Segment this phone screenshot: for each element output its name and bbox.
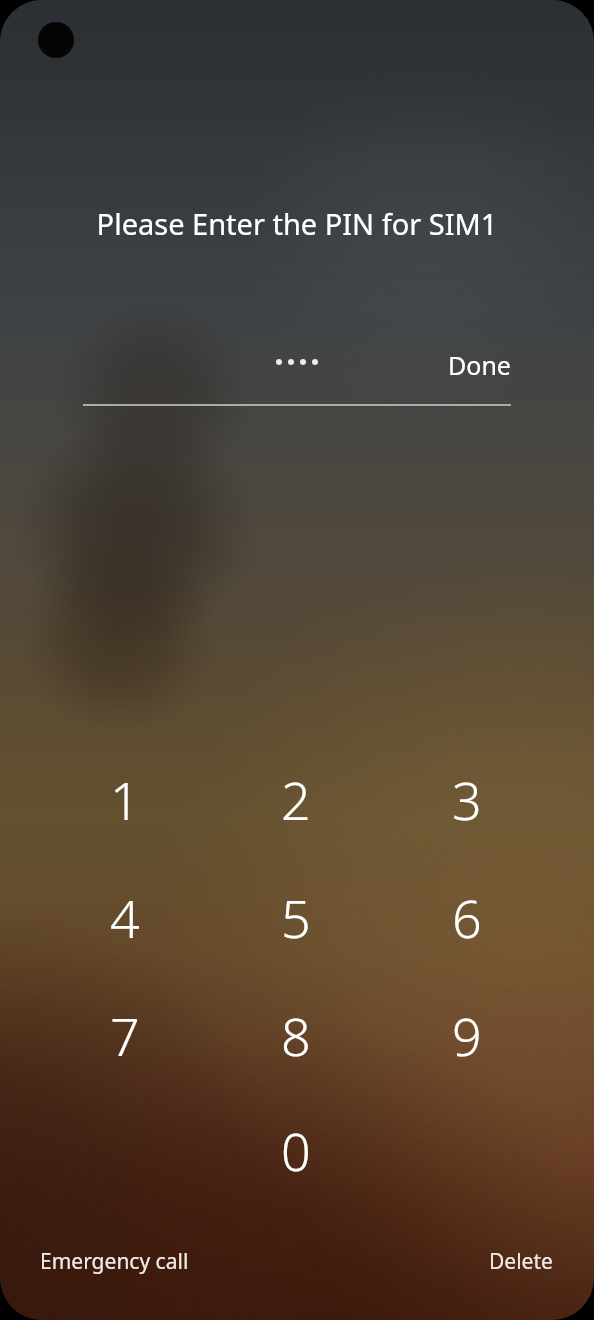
button[interactable]: Emergency call [30,1241,199,1282]
staticText: Delete [489,1247,553,1276]
staticText: 8 [281,1000,311,1071]
button[interactable]: 7 [55,979,195,1091]
staticText: 0 [281,1115,311,1186]
button[interactable]: 5 [226,861,366,973]
staticText: 4 [110,882,140,953]
button[interactable]: 9 [397,979,537,1091]
staticText: 1 [110,764,140,835]
staticText: 3 [452,764,482,835]
staticText: 5 [281,882,311,953]
button[interactable]: 3 [397,743,537,855]
staticText: 2 [281,764,311,835]
staticText: Emergency call [40,1247,189,1276]
button[interactable]: 4 [55,861,195,973]
staticText: 7 [110,1000,140,1071]
button[interactable]: 0 [226,1094,366,1206]
button[interactable]: Delete [479,1241,563,1282]
button[interactable]: 6 [397,861,537,973]
button[interactable]: 1 [55,743,195,855]
button[interactable]: 8 [226,979,366,1091]
button[interactable]: 2 [226,743,366,855]
staticText: 6 [452,882,482,953]
staticText: 9 [452,1000,482,1071]
button[interactable]: Done [442,344,517,380]
staticText: Please Enter the PIN for SIM1 [0,204,594,243]
staticText: Done [448,348,511,376]
